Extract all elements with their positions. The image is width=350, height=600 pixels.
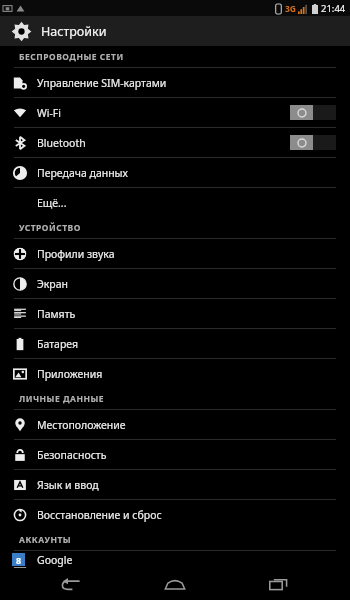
button[interactable]: Местоположение — [0, 410, 350, 439]
button[interactable]: Recents — [247, 568, 311, 600]
staticText: Профили звука — [37, 247, 350, 261]
staticText: Безопасность — [37, 448, 350, 462]
button[interactable]: Безопасность — [0, 440, 350, 469]
staticText: 8 — [16, 554, 22, 566]
button[interactable]: Back — [40, 568, 104, 600]
staticText: Bluetooth — [37, 136, 290, 150]
button[interactable]: Восстановление и сброс — [0, 500, 350, 529]
staticText: 21:44 — [321, 2, 346, 15]
staticText: Приложения — [37, 367, 350, 381]
button[interactable]: Экран — [0, 269, 350, 298]
staticText: Восстановление и сброс — [37, 508, 350, 522]
button[interactable]: Home — [143, 568, 207, 600]
staticText: Wi-Fi — [37, 106, 290, 120]
staticText: Батарея — [37, 337, 350, 351]
staticText: Настройки — [41, 23, 107, 40]
button[interactable]: Память — [0, 299, 350, 328]
button[interactable]: Настройки — [0, 16, 350, 46]
button[interactable]: Ещё... — [0, 188, 350, 217]
staticText: АККАУНТЫ — [19, 534, 72, 546]
button[interactable]: Bluetooth — [0, 128, 350, 157]
staticText: ЛИЧНЫЕ ДАННЫЕ — [19, 393, 105, 405]
button[interactable]: Профили звука — [0, 239, 350, 268]
staticText: Управление SIM-картами — [37, 76, 350, 90]
staticText: Передача данных — [37, 166, 350, 180]
staticText: 3G — [285, 3, 297, 15]
staticText: УСТРОЙСТВО — [19, 222, 81, 234]
button[interactable]: Приложения — [0, 359, 350, 388]
staticText: Память — [37, 307, 350, 321]
staticText: Экран — [37, 277, 350, 291]
staticText: Язык и ввод — [37, 478, 350, 492]
staticText: БЕСПРОВОДНЫЕ СЕТИ — [19, 51, 124, 63]
button[interactable]: Управление SIM-картами — [0, 68, 350, 97]
staticText: Местоположение — [37, 418, 350, 432]
button[interactable]: Wi-Fi — [0, 98, 350, 127]
button[interactable]: Батарея — [0, 329, 350, 358]
staticText: Ещё... — [37, 196, 350, 210]
button[interactable]: Передача данных — [0, 158, 350, 187]
button[interactable]: 8 — [0, 551, 350, 568]
staticText: Google — [37, 553, 73, 567]
button[interactable]: Язык и ввод — [0, 470, 350, 499]
